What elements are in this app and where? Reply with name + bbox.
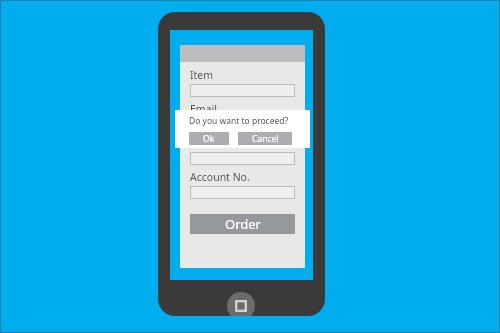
button[interactable]: Cancel bbox=[238, 132, 292, 145]
button[interactable]: Home bbox=[227, 292, 255, 316]
button[interactable] bbox=[190, 84, 295, 97]
staticText: Item bbox=[190, 68, 214, 82]
staticText: Do you want to proceed? bbox=[189, 115, 289, 127]
button[interactable]: Order bbox=[190, 214, 295, 234]
staticText: Email bbox=[190, 102, 217, 116]
staticText: Cancel bbox=[252, 133, 279, 145]
button[interactable]: Ok bbox=[189, 132, 229, 145]
button[interactable] bbox=[190, 152, 295, 165]
staticText: Address bbox=[190, 136, 230, 150]
button[interactable] bbox=[190, 118, 295, 131]
staticText: Account No. bbox=[190, 170, 250, 184]
staticText: Order bbox=[225, 215, 261, 233]
button[interactable] bbox=[190, 186, 295, 199]
staticText: Ok bbox=[203, 133, 215, 145]
